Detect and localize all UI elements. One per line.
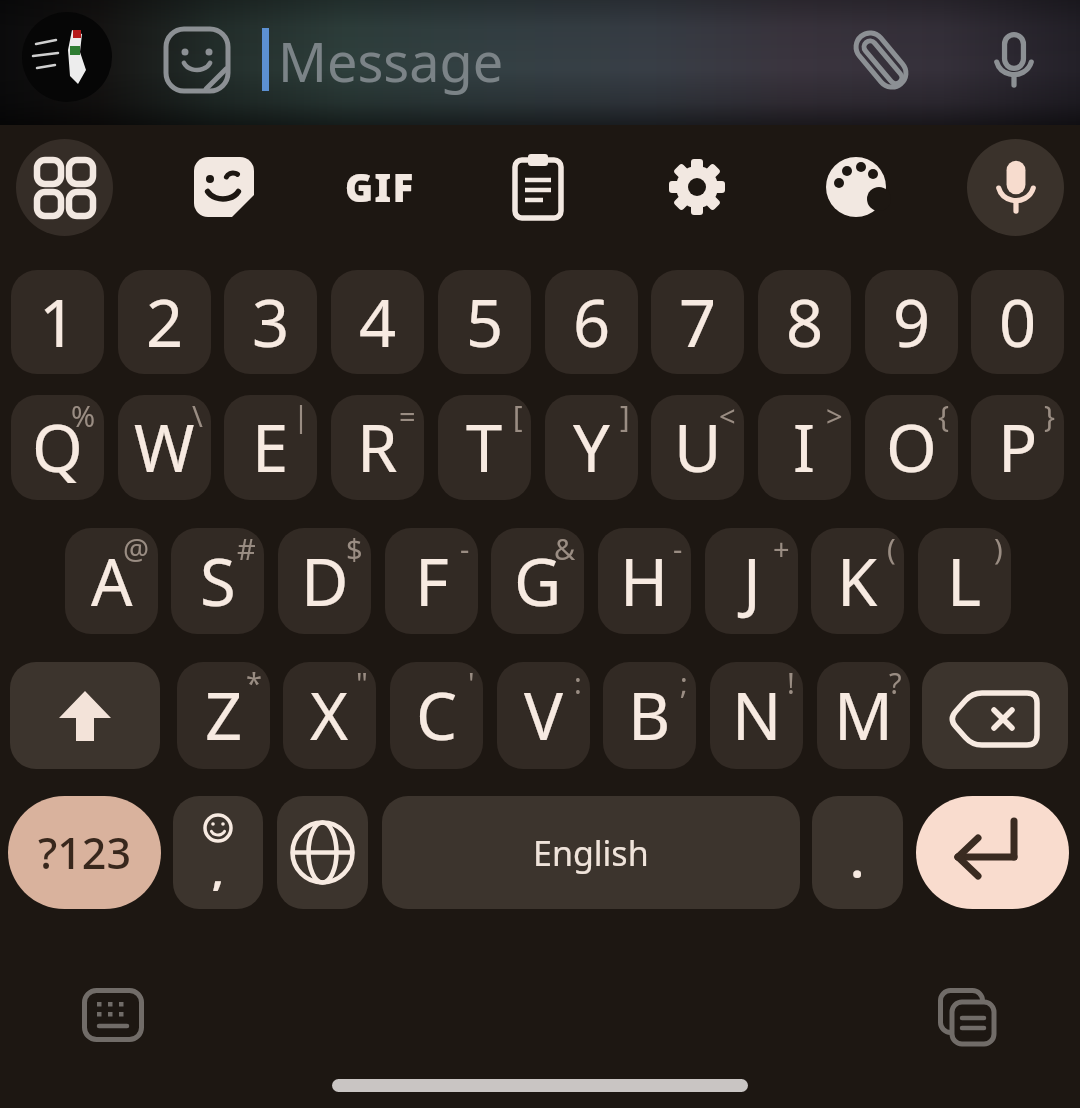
staticText: " [356,663,368,702]
staticText: @ [123,529,150,568]
staticText: M [834,671,893,760]
staticText: ; [680,663,688,702]
button[interactable]: J [705,528,798,634]
button[interactable]: E [224,395,317,500]
button[interactable]: W [118,395,211,500]
button[interactable] [10,662,160,769]
staticText: A [91,537,133,626]
staticText: , [212,843,224,897]
button[interactable]: D [278,528,371,634]
button[interactable] [967,139,1064,236]
staticText: 0 [999,278,1037,367]
button[interactable]: O [865,395,958,500]
staticText: G [514,537,562,626]
button[interactable]: 0 [971,270,1064,374]
button[interactable]: 2 [118,270,211,374]
button[interactable]: 6 [545,270,638,374]
staticText: D [301,537,349,626]
staticText: Q [32,403,83,492]
button[interactable]: 3 [224,270,317,374]
button[interactable]: English [382,796,800,909]
staticText: # [237,529,256,568]
staticText: ' [468,663,475,702]
staticText: = [399,396,416,435]
button[interactable] [78,984,148,1046]
button[interactable]: L [918,528,1011,634]
staticText: 1 [39,278,77,367]
button[interactable]: S [171,528,264,634]
staticText: GIF [345,161,415,213]
button[interactable]: ?123 [8,796,161,909]
button[interactable]: Q [11,395,104,500]
staticText: 3 [252,278,290,367]
staticText: & [554,529,576,568]
button[interactable]: I [758,395,851,500]
button[interactable]: 5 [438,270,531,374]
button[interactable]: H [598,528,691,634]
staticText: English [533,830,649,876]
button[interactable]: 1 [11,270,104,374]
staticText: P [998,403,1038,492]
staticText: : [574,663,582,702]
button[interactable]: M [817,662,910,769]
button[interactable]: V [497,662,590,769]
button[interactable] [173,796,263,909]
button[interactable]: G [491,528,584,634]
staticText: U [674,403,722,492]
staticText: S [200,537,236,626]
staticText: 6 [573,278,611,367]
staticText: W [134,403,195,492]
staticText: ? [889,663,902,702]
button[interactable]: N [710,662,803,769]
staticText: I [793,403,816,492]
staticText: | [293,396,309,435]
staticText: N [732,671,782,760]
staticText: { [938,396,950,435]
staticText: . [851,831,864,891]
button[interactable]: 8 [758,270,851,374]
button[interactable]: P [971,395,1064,500]
staticText: E [252,403,289,492]
staticText: - [673,529,683,568]
button[interactable]: F [385,528,478,634]
button[interactable]: Z [177,662,270,769]
button[interactable]: 9 [865,270,958,374]
staticText: * [246,663,262,702]
button[interactable]: Y [545,395,638,500]
button[interactable]: X [283,662,376,769]
staticText: \ [192,396,203,435]
staticText: [ [513,396,523,435]
staticText: Message [278,24,504,98]
button[interactable] [16,139,113,236]
staticText: H [620,537,669,626]
button[interactable]: R [331,395,424,500]
staticText: Z [205,671,243,760]
staticText: 7 [679,278,717,367]
button[interactable]: B [603,662,696,769]
button[interactable] [922,662,1068,769]
staticText: L [947,537,982,626]
button[interactable]: 7 [651,270,744,374]
staticText: T [466,403,503,492]
button[interactable]: A [65,528,158,634]
button[interactable] [916,796,1069,909]
staticText: ( [887,529,896,568]
staticText: F [415,537,449,626]
button[interactable]: K [811,528,904,634]
button[interactable]: 4 [331,270,424,374]
button[interactable]: C [390,662,483,769]
button[interactable]: GIF [330,150,430,224]
button[interactable] [934,984,1004,1052]
button[interactable] [277,796,368,909]
staticText: ] [620,396,630,435]
button[interactable]: U [651,395,744,500]
staticText: B [628,671,671,760]
staticText: 9 [893,278,931,367]
staticText: C [416,671,458,760]
staticText: + [773,529,790,568]
button[interactable]: . [812,796,903,909]
staticText: > [826,396,843,435]
staticText: Y [573,403,610,492]
staticText: R [357,403,398,492]
button[interactable]: T [438,395,531,500]
